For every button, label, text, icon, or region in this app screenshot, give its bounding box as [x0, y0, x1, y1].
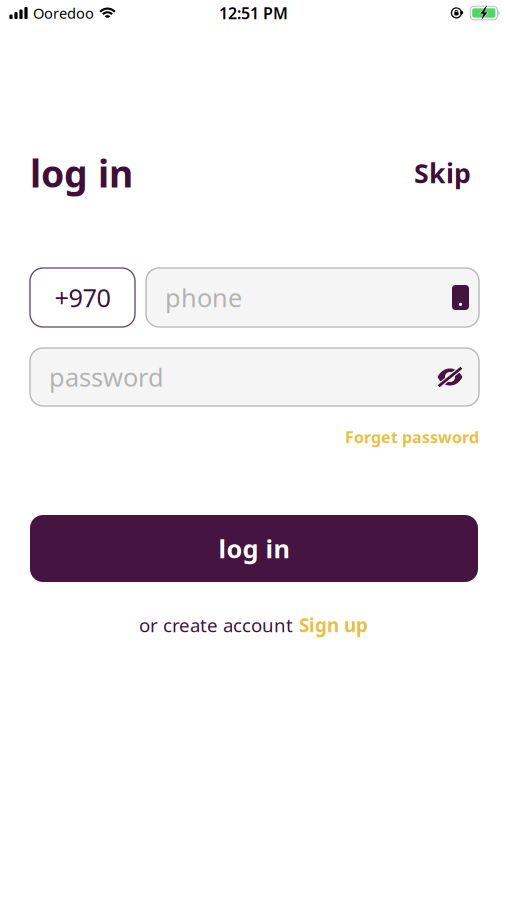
staticText: Skip: [414, 155, 471, 191]
staticText: +970: [54, 281, 110, 314]
button[interactable]: Skip: [414, 155, 471, 191]
staticText: Sign up: [299, 613, 368, 637]
button[interactable]: Sign up: [299, 613, 368, 637]
staticText: Forget password: [345, 426, 479, 448]
staticText: log in: [30, 148, 133, 198]
button[interactable]: Show password: [433, 348, 467, 406]
button[interactable]: log in: [30, 515, 478, 582]
button[interactable]: Country code +970: [30, 268, 135, 327]
button[interactable]: phone: [146, 268, 479, 327]
staticText: 12:51 PM: [219, 2, 288, 24]
button[interactable]: Forget password: [345, 426, 479, 448]
staticText: Ooredoo: [33, 3, 94, 23]
button[interactable]: password: [49, 348, 433, 406]
staticText: or create account: [139, 613, 293, 637]
staticText: phone: [165, 281, 242, 314]
staticText: log in: [218, 532, 289, 565]
staticText: password: [49, 360, 164, 394]
